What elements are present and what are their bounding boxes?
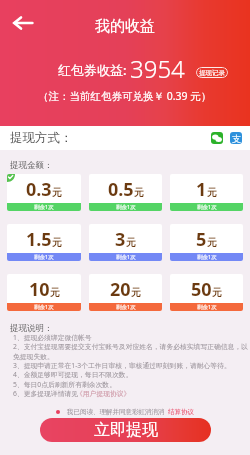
- staticText: 红包券收益:: [58, 61, 127, 79]
- staticText: 3、提现申请正常在1-3个工作日审核，审核通过即刻到账，请耐心等待。: [13, 361, 231, 370]
- button[interactable]: 0.3: [7, 174, 81, 211]
- staticText: 提现金额：: [10, 160, 53, 171]
- staticText: 元: [50, 286, 60, 299]
- button[interactable]: 立即提现: [40, 418, 211, 442]
- button[interactable]: 50: [170, 274, 243, 311]
- staticText: 元: [52, 186, 62, 199]
- staticText: 5、每日0点后刷新所有剩余次数。: [13, 380, 116, 389]
- button[interactable]: 0.5: [89, 174, 162, 211]
- staticText: 50: [191, 277, 212, 302]
- staticText: 10: [29, 277, 50, 302]
- button[interactable]: Alipay: [230, 132, 242, 144]
- staticText: 1.5: [26, 227, 52, 252]
- staticText: 剩余1次: [34, 203, 54, 211]
- staticText: 0.5: [108, 177, 134, 202]
- button[interactable]: 1.5: [7, 224, 81, 261]
- staticText: 免提现失败。: [13, 352, 54, 361]
- staticText: 1、提现必须绑定微信帐号: [13, 333, 92, 342]
- staticText: 3954: [130, 52, 185, 85]
- staticText: 结算协议: [168, 408, 194, 416]
- staticText: 元: [212, 286, 222, 299]
- staticText: （注：当前红包券可兑换￥ 0.39 元）: [38, 89, 212, 103]
- button[interactable]: 5: [170, 224, 243, 261]
- staticText: 我的收益: [95, 17, 155, 36]
- staticText: 1: [196, 177, 207, 202]
- button[interactable]: 我已阅读、理解并同意彩虹消消消: [54, 406, 196, 418]
- staticText: 剩余1次: [116, 303, 136, 311]
- staticText: 剩余1次: [197, 253, 217, 261]
- staticText: 元: [134, 186, 144, 199]
- staticText: 提现记录: [199, 69, 225, 77]
- staticText: 元: [52, 236, 62, 249]
- button[interactable]: WeChat: [211, 132, 223, 144]
- staticText: 支: [232, 133, 241, 144]
- staticText: 剩余1次: [34, 303, 54, 311]
- staticText: 剩余1次: [197, 303, 217, 311]
- button[interactable]: Back: [7, 7, 38, 38]
- staticText: 提现方式：: [10, 130, 73, 146]
- button[interactable]: 1: [170, 174, 243, 211]
- staticText: 元: [207, 186, 217, 199]
- button[interactable]: 3: [89, 224, 162, 261]
- staticText: 元: [126, 236, 136, 249]
- staticText: 6、更多提现详情请见: [13, 389, 79, 398]
- staticText: 剩余1次: [116, 203, 136, 211]
- staticText: 我已阅读、理解并同意彩虹消消消: [67, 408, 165, 416]
- staticText: 元: [131, 286, 141, 299]
- staticText: 4、金额足够即可提现，每日不限次数。: [13, 370, 133, 379]
- staticText: 0.3: [26, 177, 52, 202]
- staticText: 剩余1次: [34, 253, 54, 261]
- staticText: 2、支付宝提现需要提交支付宝账号及对应姓名，请务必核实填写正确信息，以: [13, 342, 248, 351]
- staticText: 5: [196, 227, 207, 252]
- staticText: 剩余1次: [197, 203, 217, 211]
- button[interactable]: 10: [7, 274, 81, 311]
- staticText: 立即提现: [94, 420, 158, 440]
- staticText: 《用户提现协议》: [76, 389, 131, 398]
- button[interactable]: 20: [89, 274, 162, 311]
- staticText: 20: [110, 277, 131, 302]
- staticText: 提现说明：: [10, 323, 53, 334]
- staticText: 剩余1次: [116, 253, 136, 261]
- button[interactable]: 提现记录: [196, 67, 228, 78]
- staticText: 元: [207, 236, 217, 249]
- staticText: 3: [115, 227, 126, 252]
